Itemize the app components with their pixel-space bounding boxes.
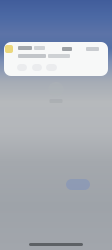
button[interactable] <box>4 42 108 76</box>
